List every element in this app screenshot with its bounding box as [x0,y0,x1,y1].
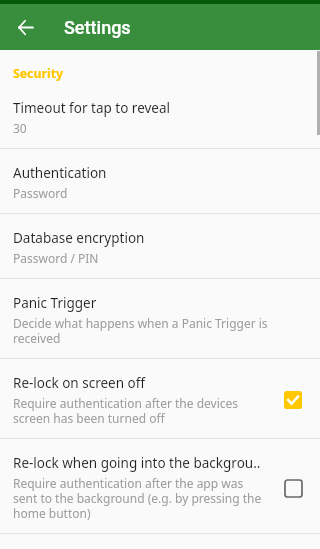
button[interactable]: Re-lock on screen off [0,359,320,439]
staticText: Timeout for tap to reveal [13,99,171,117]
staticText: Require authentication after the devices… [13,395,265,426]
button[interactable]: Re-lock when going into the backgrou.. [0,439,320,534]
button[interactable]: Panic Trigger [0,279,320,359]
staticText: Re-lock when going into the backgrou.. [13,454,261,472]
staticText: Require authentication after the app was… [13,475,265,521]
button[interactable]: Database encryption [0,214,320,279]
staticText: Security [13,65,63,82]
staticText: Decide what happens when a Panic Trigger… [13,315,309,346]
button[interactable]: Authentication [0,149,320,214]
staticText: Authentication [13,164,107,182]
staticText: 30 [13,120,27,136]
staticText: Password / PIN [13,250,99,266]
staticText: Settings [64,17,131,38]
staticText: Panic Trigger [13,294,97,312]
staticText: Database encryption [13,229,145,247]
button[interactable]: Toggle setting [277,384,309,416]
staticText: Re-lock on screen off [13,374,146,392]
button[interactable]: Back [11,13,39,41]
button[interactable]: Toggle setting [277,472,309,504]
staticText: Password [13,185,68,201]
button[interactable]: Timeout for tap to reveal [0,84,320,149]
